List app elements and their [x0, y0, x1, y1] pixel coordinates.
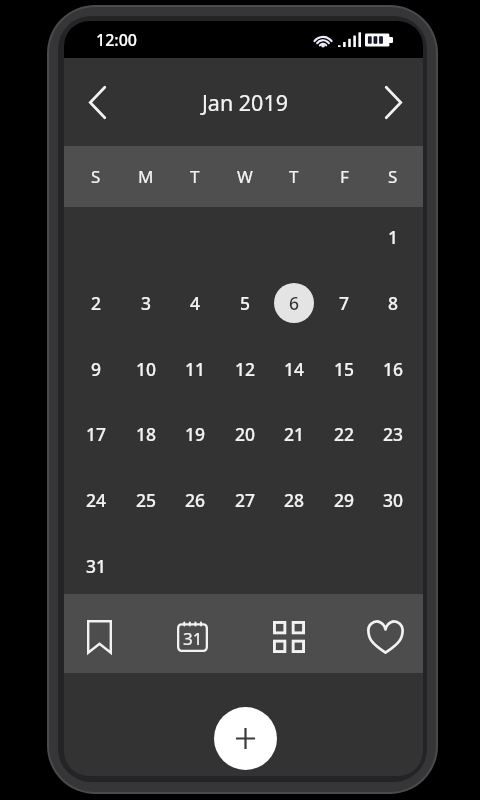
staticText: 17: [86, 422, 107, 446]
staticText: 22: [334, 422, 355, 446]
button[interactable]: Previous month: [69, 74, 125, 130]
button[interactable]: 30: [373, 480, 413, 520]
button[interactable]: 5: [225, 283, 265, 323]
staticText: 14: [284, 357, 305, 381]
button[interactable]: 17: [76, 414, 116, 454]
button[interactable]: Add event: [214, 707, 277, 770]
staticText: S: [91, 165, 101, 188]
button[interactable]: Favorites: [356, 594, 414, 673]
staticText: F: [340, 165, 349, 188]
button[interactable]: Bookmarks: [70, 594, 128, 673]
staticText: 26: [185, 488, 206, 512]
staticText: W: [237, 165, 253, 188]
staticText: 2: [91, 291, 102, 315]
button[interactable]: 2: [76, 283, 116, 323]
button[interactable]: 6: [274, 283, 314, 323]
button[interactable]: 11: [175, 349, 215, 389]
staticText: 30: [383, 488, 404, 512]
button[interactable]: 23: [373, 414, 413, 454]
button[interactable]: 4: [175, 283, 215, 323]
button[interactable]: 24: [76, 480, 116, 520]
button[interactable]: 18: [126, 414, 166, 454]
staticText: 21: [284, 422, 305, 446]
staticText: 31: [183, 627, 203, 650]
staticText: 18: [136, 422, 157, 446]
button[interactable]: 25: [126, 480, 166, 520]
button[interactable]: 29: [324, 480, 364, 520]
staticText: 12:00: [96, 29, 137, 51]
button[interactable]: 7: [324, 283, 364, 323]
button[interactable]: 26: [175, 480, 215, 520]
staticText: 19: [185, 422, 206, 446]
button[interactable]: 19: [175, 414, 215, 454]
staticText: M: [138, 165, 154, 188]
staticText: 16: [383, 357, 404, 381]
staticText: 12: [235, 357, 256, 381]
staticText: 20: [235, 422, 256, 446]
button[interactable]: 8: [373, 283, 413, 323]
button[interactable]: 12: [225, 349, 265, 389]
button[interactable]: 15: [324, 349, 364, 389]
button[interactable]: 10: [126, 349, 166, 389]
staticText: 27: [235, 488, 256, 512]
staticText: S: [388, 165, 398, 188]
staticText: 7: [339, 291, 350, 315]
button[interactable]: 9: [76, 349, 116, 389]
staticText: 8: [388, 291, 399, 315]
staticText: 23: [383, 422, 404, 446]
staticText: T: [190, 165, 200, 188]
button[interactable]: Calendar: [163, 594, 221, 673]
button[interactable]: 28: [274, 480, 314, 520]
staticText: Jan 2019: [202, 88, 289, 117]
staticText: 29: [334, 488, 355, 512]
button[interactable]: 20: [225, 414, 265, 454]
button[interactable]: 22: [324, 414, 364, 454]
button[interactable]: 1: [373, 217, 413, 257]
button[interactable]: 21: [274, 414, 314, 454]
staticText: 10: [136, 357, 157, 381]
staticText: T: [289, 165, 299, 188]
staticText: 3: [141, 291, 152, 315]
button[interactable]: 14: [274, 349, 314, 389]
button[interactable]: 31: [76, 546, 116, 586]
button[interactable]: 27: [225, 480, 265, 520]
staticText: 4: [190, 291, 201, 315]
button[interactable]: 3: [126, 283, 166, 323]
staticText: 15: [334, 357, 355, 381]
staticText: 11: [185, 357, 206, 381]
staticText: 5: [240, 291, 251, 315]
staticText: 6: [289, 291, 300, 315]
staticText: 24: [86, 488, 107, 512]
button[interactable]: Next month: [365, 74, 421, 130]
staticText: 9: [91, 357, 102, 381]
staticText: 1: [388, 225, 399, 249]
staticText: 25: [136, 488, 157, 512]
button[interactable]: 16: [373, 349, 413, 389]
staticText: 31: [86, 554, 107, 578]
button[interactable]: Apps: [260, 594, 318, 673]
staticText: 28: [284, 488, 305, 512]
